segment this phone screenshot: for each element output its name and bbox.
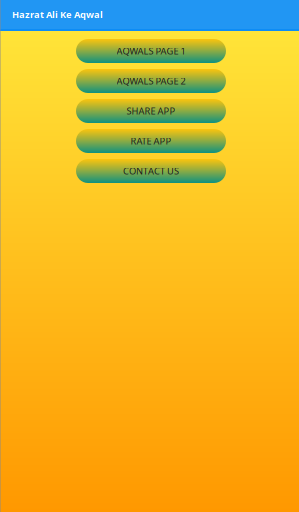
staticText: SHARE APP bbox=[126, 105, 175, 117]
button[interactable]: CONTACT US bbox=[76, 159, 226, 183]
button[interactable]: AQWALS PAGE 2 bbox=[76, 69, 226, 93]
staticText: Hazrat Ali Ke Aqwal bbox=[12, 8, 103, 21]
button[interactable]: AQWALS PAGE 1 bbox=[76, 39, 226, 63]
staticText: AQWALS PAGE 2 bbox=[116, 75, 185, 87]
button[interactable]: RATE APP bbox=[76, 129, 226, 153]
staticText: CONTACT US bbox=[123, 165, 179, 177]
staticText: RATE APP bbox=[130, 135, 171, 147]
staticText: AQWALS PAGE 1 bbox=[116, 45, 185, 57]
button[interactable]: SHARE APP bbox=[76, 99, 226, 123]
